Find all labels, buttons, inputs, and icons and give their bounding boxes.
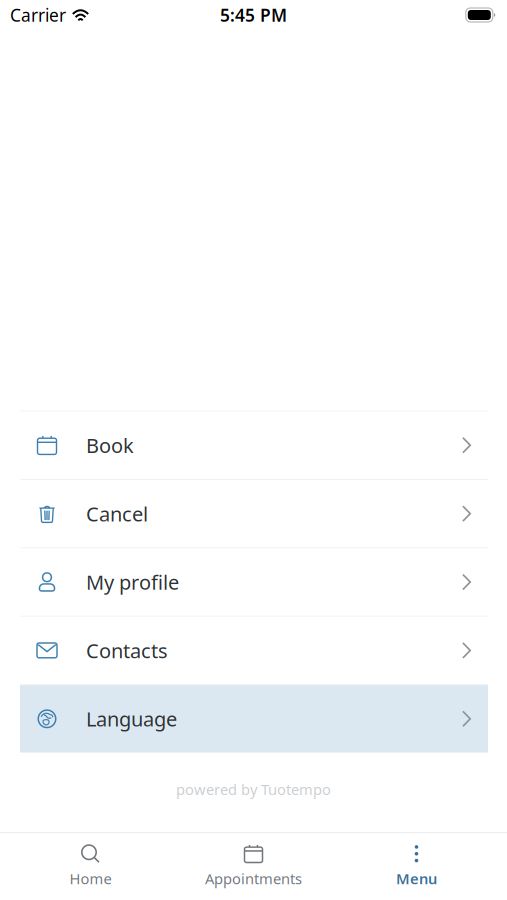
button[interactable]: Menu: [335, 832, 498, 900]
button[interactable]: Appointments: [172, 832, 335, 900]
staticText: Cancel: [86, 500, 148, 527]
staticText: powered by Tuotempo: [176, 779, 331, 799]
staticText: Appointments: [205, 869, 302, 888]
staticText: Language: [86, 705, 177, 732]
staticText: Menu: [396, 869, 437, 888]
staticText: Carrier: [10, 3, 66, 26]
button[interactable]: Cancel: [0, 480, 507, 547]
button[interactable]: Book: [0, 411, 507, 479]
button[interactable]: Home: [9, 832, 172, 900]
button[interactable]: Language: [0, 685, 507, 752]
staticText: Home: [69, 869, 111, 888]
staticText: Book: [86, 432, 134, 458]
button[interactable]: Contacts: [0, 617, 507, 684]
button[interactable]: My profile: [0, 548, 507, 616]
staticText: 5:45 PM: [220, 3, 287, 26]
staticText: My profile: [86, 569, 179, 595]
staticText: Contacts: [86, 637, 168, 664]
